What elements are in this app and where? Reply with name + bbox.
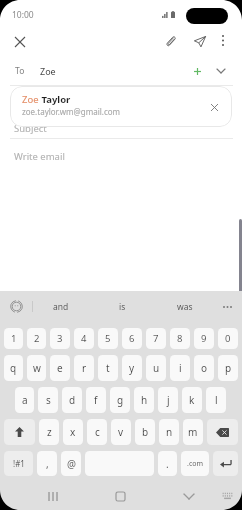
staticText: 9 [201, 332, 207, 345]
button[interactable]: Emoji [0, 291, 32, 322]
button[interactable]: Home [102, 482, 138, 510]
staticText: is [119, 301, 126, 313]
button[interactable]: Remove recipient [205, 98, 223, 116]
staticText: m [188, 425, 198, 439]
staticText: 1 [11, 332, 17, 345]
button[interactable]: j [158, 387, 178, 413]
staticText: d [69, 393, 76, 407]
staticText: . [166, 457, 169, 471]
staticText: s [46, 393, 51, 407]
button[interactable]: Zoe [10, 86, 232, 127]
button[interactable]: 2 [27, 328, 46, 349]
button[interactable]: 5 [98, 328, 118, 349]
button[interactable]: Shift [4, 419, 35, 445]
button[interactable]: t [98, 355, 118, 381]
staticText: 2 [34, 332, 40, 345]
staticText: n [166, 425, 173, 439]
staticText: y [129, 361, 135, 375]
button[interactable]: h [134, 387, 154, 413]
staticText: r [82, 361, 87, 375]
staticText: x [70, 425, 76, 439]
staticText: v [118, 425, 124, 439]
button[interactable]: a [15, 387, 34, 413]
button[interactable]: More options [212, 29, 234, 51]
button[interactable]: !#1 [4, 451, 33, 476]
button[interactable]: q [4, 355, 23, 381]
staticText: 5 [105, 332, 111, 345]
button[interactable]: 9 [194, 328, 214, 349]
button[interactable]: Send [188, 29, 212, 53]
staticText: Zoe [40, 65, 56, 77]
button[interactable]: , [37, 451, 57, 476]
button[interactable]: c [87, 419, 107, 445]
button[interactable]: Close [7, 29, 32, 54]
staticText: was [177, 301, 193, 313]
button[interactable]: w [27, 355, 46, 381]
button[interactable]: e [50, 355, 70, 381]
button[interactable]: d [62, 387, 82, 413]
staticText: Taylor [39, 93, 71, 106]
button[interactable]: 7 [146, 328, 166, 349]
button[interactable]: Recent apps [35, 482, 71, 510]
button[interactable]: y [122, 355, 142, 381]
button[interactable]: Add recipient [186, 60, 209, 82]
staticText: 7 [153, 332, 159, 345]
button[interactable]: z [39, 419, 59, 445]
staticText: zoe.taylor.wm@gmail.com [22, 106, 121, 117]
staticText: q [10, 361, 17, 375]
button[interactable]: .com [181, 451, 209, 476]
button[interactable]: Change keyboard [211, 482, 242, 510]
button[interactable]: v [111, 419, 131, 445]
button[interactable]: 1 [4, 328, 23, 349]
staticText: j [167, 393, 170, 407]
button[interactable]: m [183, 419, 203, 445]
staticText: a [22, 393, 28, 407]
button[interactable]: was [160, 291, 210, 322]
button[interactable]: l [206, 387, 226, 413]
button[interactable]: k [182, 387, 202, 413]
staticText: .com [187, 459, 204, 469]
button[interactable]: is [97, 291, 147, 322]
button[interactable]: n [159, 419, 179, 445]
staticText: 0 [225, 332, 231, 345]
staticText: g [117, 393, 124, 407]
staticText: Write email [14, 150, 65, 163]
button[interactable]: Backspace [207, 419, 238, 445]
staticText: 8 [177, 332, 183, 345]
button[interactable]: Attach file [159, 29, 183, 53]
staticText: u [153, 361, 160, 375]
staticText: w [33, 361, 41, 375]
button[interactable]: u [146, 355, 166, 381]
staticText: f [94, 393, 98, 407]
button[interactable]: 8 [170, 328, 190, 349]
button[interactable]: g [110, 387, 130, 413]
staticText: k [189, 393, 195, 407]
button[interactable]: x [63, 419, 83, 445]
button[interactable]: Enter [213, 451, 238, 476]
button[interactable]: 6 [122, 328, 142, 349]
button[interactable]: More suggestions [212, 291, 242, 322]
button[interactable]: 3 [50, 328, 70, 349]
staticText: !#1 [13, 458, 25, 469]
button[interactable]: 4 [74, 328, 94, 349]
button[interactable]: 0 [218, 328, 238, 349]
button[interactable]: Expand recipients [209, 60, 232, 82]
staticText: i [179, 361, 182, 375]
button[interactable]: p [218, 355, 238, 381]
staticText: c [95, 425, 100, 439]
button[interactable]: Hide keyboard [171, 482, 207, 510]
button[interactable]: b [135, 419, 155, 445]
staticText: b [142, 425, 149, 439]
staticText: and [53, 301, 69, 313]
button[interactable]: and [36, 291, 86, 322]
button[interactable]: r [74, 355, 94, 381]
button[interactable]: i [170, 355, 190, 381]
button[interactable]: @ [61, 451, 81, 476]
button[interactable]: o [194, 355, 214, 381]
staticText: Subject [14, 122, 47, 135]
button[interactable]: s [38, 387, 58, 413]
button[interactable]: . [158, 451, 177, 476]
button[interactable]: f [86, 387, 106, 413]
staticText: 10:00 [12, 9, 34, 21]
